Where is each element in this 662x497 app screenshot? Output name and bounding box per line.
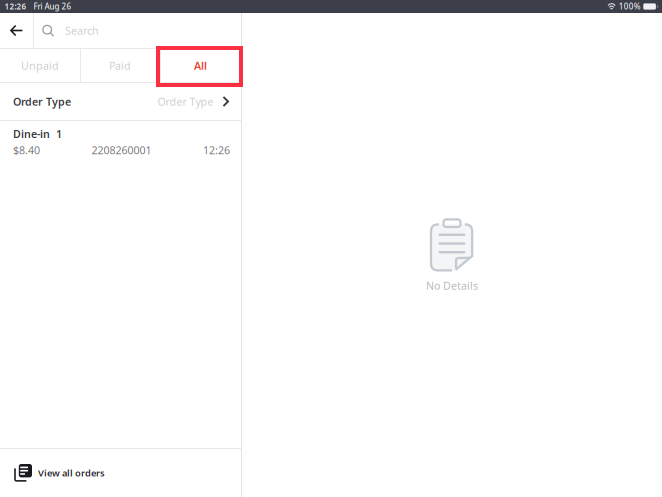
staticText: Fri Aug 26 (33, 1, 71, 12)
staticText: Order Type (13, 94, 71, 109)
staticText: 1 (56, 127, 62, 141)
button[interactable]: Search (34, 13, 241, 48)
staticText: 12:26 (4, 1, 26, 12)
staticText: 12:26 (203, 143, 230, 157)
button[interactable]: Order Type (0, 83, 241, 120)
button[interactable]: Paid (80, 49, 160, 82)
button[interactable]: Back (0, 13, 33, 48)
staticText: $8.40 (13, 143, 40, 157)
staticText: Order Type (157, 94, 213, 109)
staticText: 2208260001 (91, 143, 151, 157)
button[interactable]: Dine-in (0, 121, 241, 164)
button[interactable]: View all orders (0, 449, 241, 497)
staticText: Dine-in (13, 127, 50, 141)
staticText: View all orders (38, 467, 105, 479)
staticText: Unpaid (21, 58, 59, 73)
button[interactable]: Unpaid (0, 49, 80, 82)
staticText: All (194, 58, 207, 73)
staticText: No Details (426, 278, 478, 293)
button[interactable]: All (160, 49, 241, 82)
staticText: 100% (619, 1, 641, 12)
staticText: Search (65, 23, 99, 38)
staticText: Paid (109, 58, 131, 73)
